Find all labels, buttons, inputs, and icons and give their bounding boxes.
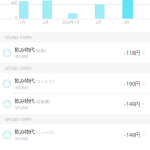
staticText: 3月24日 [14, 136, 28, 141]
staticText: > [142, 131, 145, 138]
staticText: > [142, 100, 145, 107]
staticText: 0 [15, 14, 17, 20]
staticText: 飲み物代 [14, 46, 34, 53]
staticText: 3月26日 (339円) [4, 66, 31, 71]
staticText: 2月 [95, 19, 101, 25]
staticText: -190円 [124, 80, 140, 87]
button[interactable]: 飲み物代 [0, 74, 150, 94]
button[interactable]: 飲み物代 [0, 94, 150, 114]
staticText: 3月26日 [14, 85, 28, 90]
staticText: 3月 [123, 19, 129, 25]
staticText: (コンビニ) [36, 79, 54, 84]
staticText: 3月24日 (149円) [4, 117, 31, 122]
staticText: > [142, 80, 145, 87]
button[interactable]: 飲み物代 [0, 43, 150, 63]
staticText: (自販機) [36, 99, 50, 104]
button[interactable]: 飲み物代 [0, 125, 150, 145]
staticText: -118円 [124, 49, 140, 56]
staticText: 2月 [43, 19, 49, 25]
staticText: -149円 [124, 131, 140, 138]
staticText: 3月28日 [14, 54, 28, 59]
staticText: (自販) [36, 48, 46, 53]
staticText: 2023年1月 [62, 19, 80, 25]
staticText: 飲み物代 [14, 98, 34, 104]
staticText: 400 [11, 0, 17, 5]
staticText: -149円 [124, 100, 140, 107]
staticText: 3月28日 (118円) [4, 35, 31, 40]
staticText: > [142, 49, 145, 56]
staticText: (ジュース) [36, 130, 54, 135]
staticText: 1月 [19, 19, 25, 25]
staticText: 飲み物代 [14, 128, 34, 135]
staticText: 飲み物代 [14, 77, 34, 84]
staticText: 3月26日 [14, 105, 28, 110]
